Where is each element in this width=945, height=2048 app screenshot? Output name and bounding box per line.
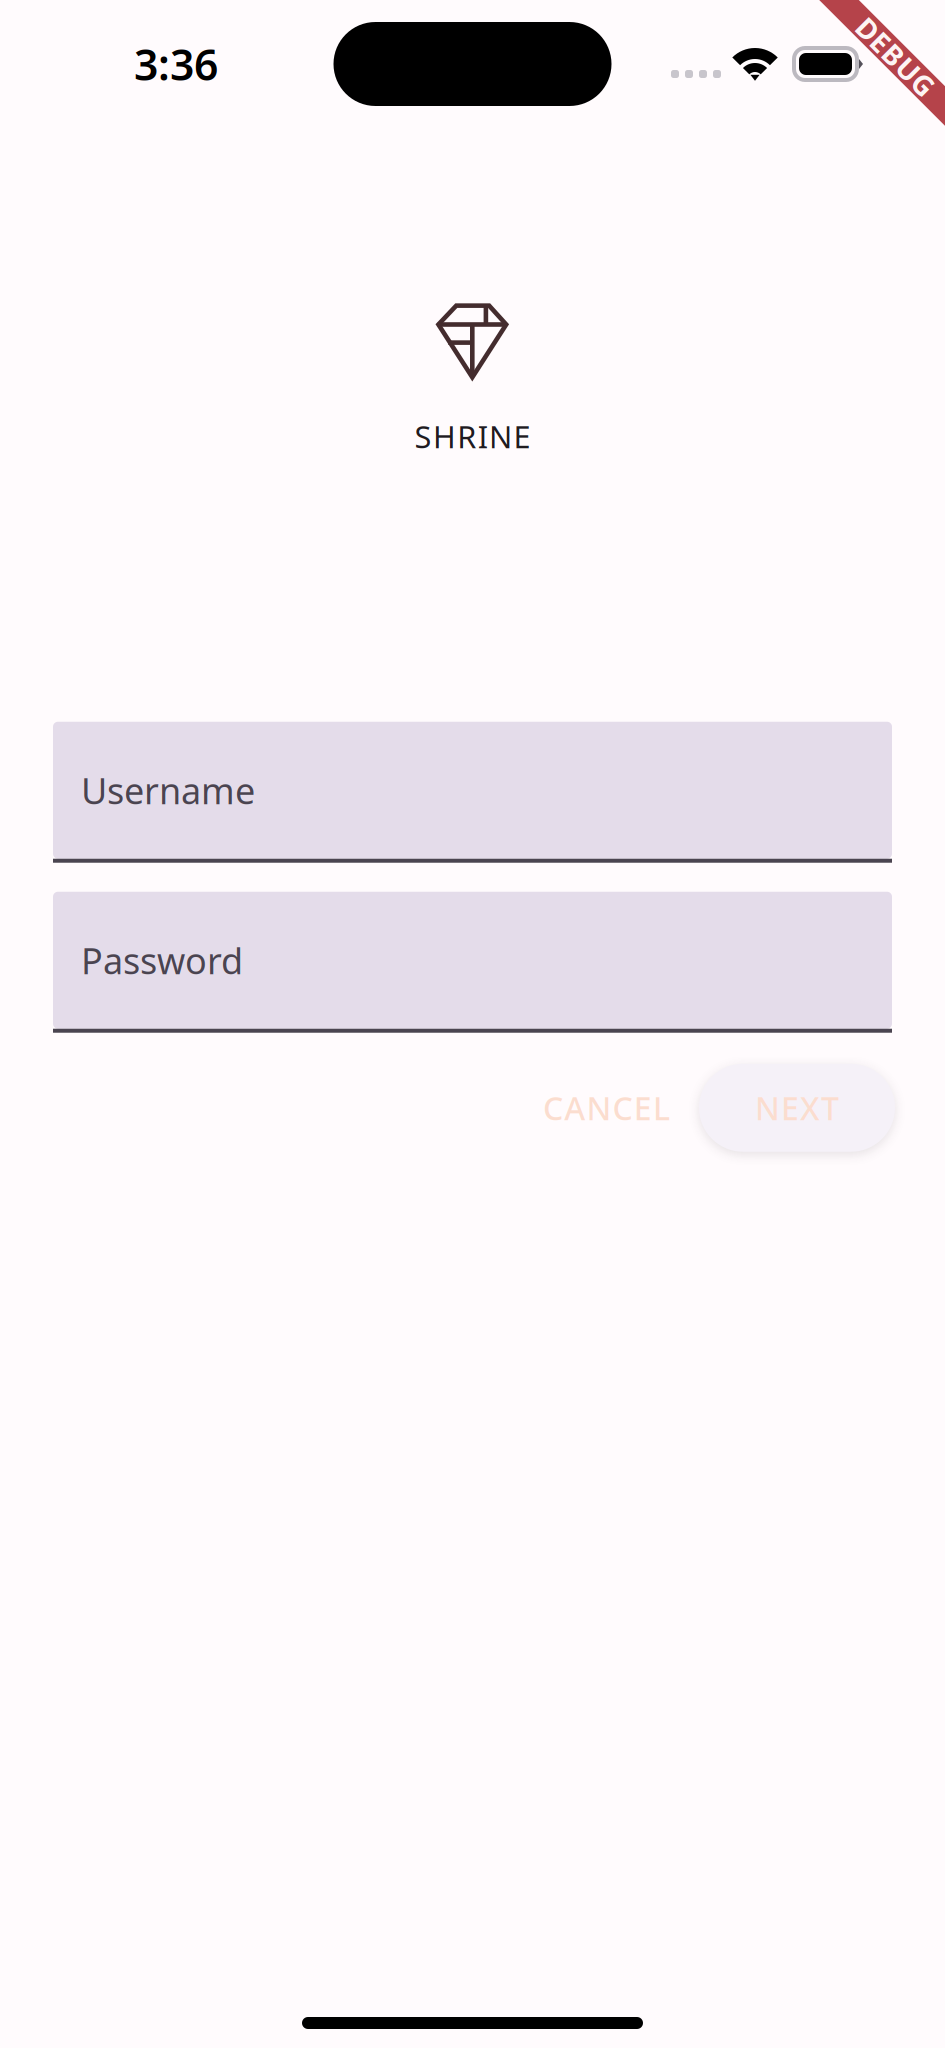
button[interactable]: C	[515, 1064, 698, 1152]
button[interactable]: Password	[53, 892, 892, 1033]
staticText: C	[543, 1086, 563, 1129]
staticText: Password	[81, 936, 243, 984]
staticText: U	[903, 38, 924, 75]
staticText: T	[821, 1086, 839, 1129]
staticText: C	[613, 1086, 633, 1129]
staticText: S	[414, 416, 431, 457]
staticText: X	[800, 1086, 820, 1129]
staticText: N	[586, 1086, 611, 1129]
staticText: L	[653, 1086, 670, 1129]
staticText: N	[755, 1086, 780, 1129]
staticText: G	[925, 38, 945, 75]
staticText: D	[846, 38, 866, 75]
staticText: E	[781, 1086, 799, 1129]
staticText: N	[489, 416, 512, 457]
staticText: H	[433, 416, 456, 457]
staticText: I	[478, 416, 488, 457]
staticText: E	[634, 1086, 652, 1129]
staticText: 3:36	[134, 36, 218, 92]
staticText: A	[564, 1086, 585, 1129]
button[interactable]: N	[699, 1064, 895, 1152]
staticText: E	[513, 416, 530, 457]
staticText: E	[867, 38, 883, 75]
staticText: R	[457, 416, 476, 457]
staticText: Username	[81, 766, 255, 814]
button[interactable]: Username	[53, 722, 892, 863]
staticText: B	[883, 38, 902, 75]
